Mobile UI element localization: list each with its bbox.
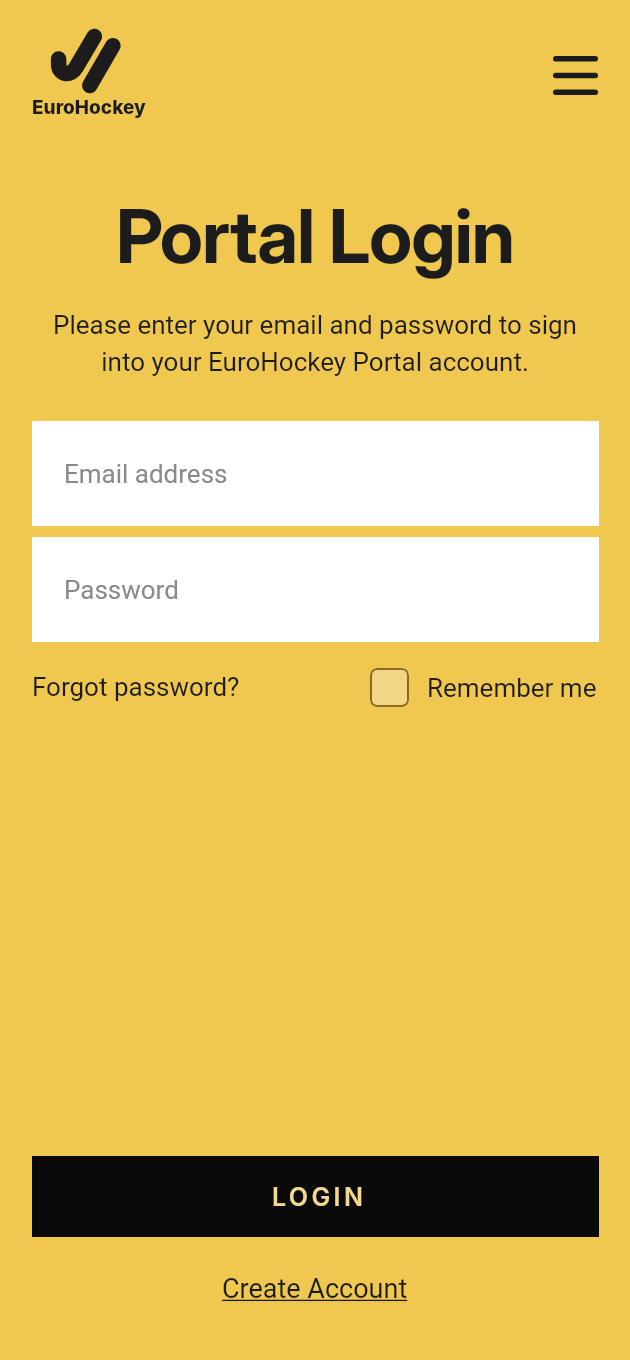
staticText: EuroHockey [32,96,146,119]
button[interactable]: Menu [537,43,614,108]
staticText: Please enter your email and password to … [0,310,630,377]
staticText: LOGIN [272,1182,367,1212]
button[interactable]: EuroHockey home [32,18,146,119]
button[interactable]: Forgot password? [32,668,240,706]
staticText: Forgot password? [32,672,240,702]
button[interactable]: LOGIN [32,1156,599,1237]
button[interactable]: Remember me [370,668,597,707]
button[interactable]: Email address [32,421,599,526]
staticText: Portal Login [0,191,630,281]
button[interactable]: Password [32,537,599,642]
staticText: Remember me [427,673,597,703]
staticText: Password [64,575,179,605]
staticText: Email address [64,459,228,489]
button[interactable]: Create Account [222,1273,408,1305]
